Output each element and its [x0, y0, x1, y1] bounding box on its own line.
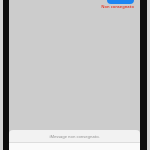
staticText: iMessage non consegnato.	[49, 134, 100, 139]
button[interactable]: Messaggio inviato	[107, 0, 134, 4]
staticText: Non consegnato	[101, 4, 134, 9]
button[interactable]: iMessage non consegnato.	[9, 130, 140, 142]
